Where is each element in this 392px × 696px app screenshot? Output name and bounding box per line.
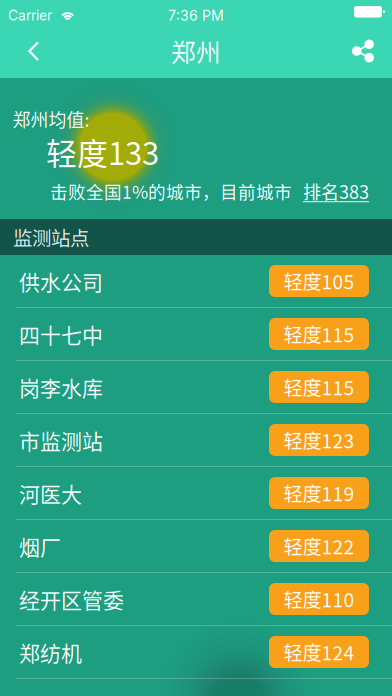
staticText: 四十七中 — [19, 319, 103, 349]
staticText: 供水公司 — [19, 266, 103, 296]
staticText: 轻度122 — [283, 532, 354, 560]
button[interactable]: 排名383 — [303, 178, 369, 204]
staticText: 轻度123 — [283, 426, 354, 454]
staticText: 轻度124 — [283, 638, 354, 666]
staticText: 击败全国1%的城市，目前城市 — [50, 178, 292, 204]
staticText: 轻度110 — [283, 585, 354, 613]
staticText: 岗李水库 — [19, 372, 103, 402]
button[interactable]: Back — [0, 24, 55, 78]
staticText: 市监测站 — [19, 425, 103, 455]
button[interactable]: 烟厂 — [0, 520, 392, 573]
staticText: 经开区管委 — [19, 584, 124, 614]
staticText: 轻度115 — [283, 373, 354, 401]
staticText: Carrier — [8, 7, 52, 24]
staticText: 烟厂 — [19, 531, 61, 561]
staticText: 排名383 — [303, 178, 369, 204]
button[interactable]: 市监测站 — [0, 414, 392, 467]
button[interactable]: 经开区管委 — [0, 573, 392, 626]
staticText: 轻度133 — [46, 129, 159, 174]
staticText: 郑州均值: — [12, 106, 89, 132]
button[interactable]: 郑纺机 — [0, 626, 392, 679]
staticText: 郑纺机 — [19, 637, 82, 667]
staticText: 郑州 — [171, 33, 221, 69]
button[interactable]: 河医大 — [0, 467, 392, 520]
button[interactable]: 四十七中 — [0, 308, 392, 361]
staticText: 河医大 — [19, 478, 82, 508]
button[interactable]: Share — [336, 24, 392, 78]
staticText: 轻度119 — [283, 479, 354, 507]
staticText: 监测站点 — [13, 223, 89, 251]
staticText: 轻度115 — [283, 320, 354, 348]
button[interactable]: 岗李水库 — [0, 361, 392, 414]
staticText: 7:36 PM — [168, 7, 224, 24]
button[interactable]: 供水公司 — [0, 255, 392, 308]
staticText: 轻度105 — [283, 267, 354, 295]
